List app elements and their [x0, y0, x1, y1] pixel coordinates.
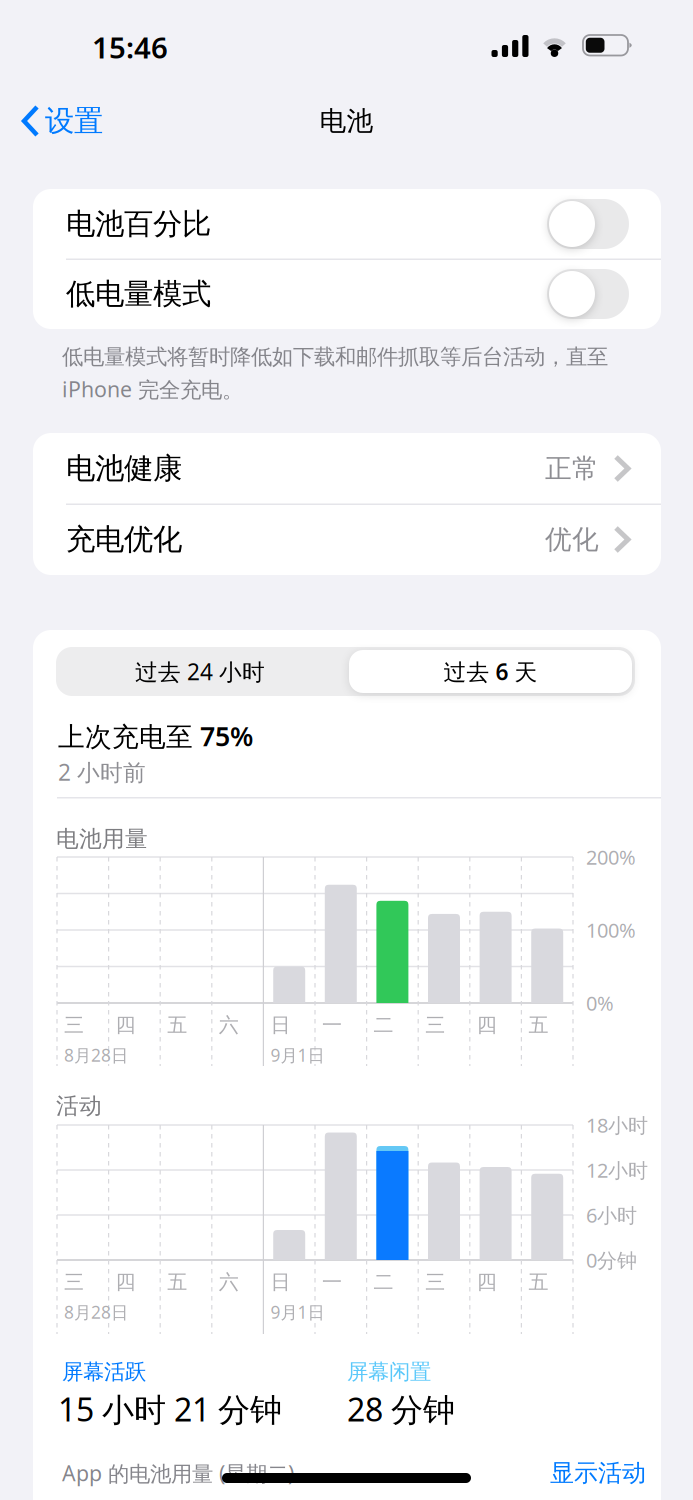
staticText: 电池百分比 — [66, 206, 211, 242]
staticText: App 的电池用量 (星期二) — [62, 1459, 294, 1487]
staticText: iPhone 完全充电。 — [62, 375, 243, 403]
button[interactable]: 电池健康 — [33, 433, 661, 504]
button[interactable]: 过去 6 天 — [349, 650, 632, 693]
staticText: 过去 6 天 — [443, 656, 537, 686]
staticText: 六 — [219, 1270, 239, 1294]
button[interactable]: 电池百分比 — [33, 189, 661, 259]
staticText: 五 — [167, 1013, 187, 1037]
staticText: 屏幕活跃 — [62, 1359, 146, 1385]
staticText: 0% — [586, 990, 614, 1016]
button[interactable]: 显示活动 — [542, 1455, 646, 1491]
button[interactable]: 低电量模式 — [33, 259, 661, 329]
button[interactable]: 充电优化 — [33, 504, 661, 575]
staticText: 充电优化 — [66, 521, 182, 557]
staticText: 15 小时 21 分钟 — [58, 1388, 282, 1430]
staticText: 三 — [64, 1013, 84, 1037]
button[interactable]: 设置 — [22, 99, 132, 143]
staticText: 电池用量 — [56, 825, 148, 853]
staticText: 优化 — [545, 523, 599, 556]
staticText: 活动 — [56, 1092, 102, 1120]
staticText: 28 分钟 — [347, 1388, 455, 1430]
staticText: 9月1日 — [270, 1300, 324, 1323]
staticText: 四 — [116, 1270, 136, 1294]
staticText: 日 — [270, 1270, 290, 1294]
staticText: 低电量模式将暂时降低如下载和邮件抓取等后台活动，直至 — [62, 344, 608, 370]
staticText: 四 — [116, 1013, 136, 1037]
staticText: 上次充电至 75% — [58, 718, 253, 754]
staticText: 200% — [586, 844, 636, 870]
staticText: 2 小时前 — [58, 757, 146, 787]
staticText: 六 — [219, 1013, 239, 1037]
staticText: 100% — [586, 917, 636, 943]
staticText: 三 — [64, 1270, 84, 1294]
staticText: 8月28日 — [64, 1300, 128, 1323]
staticText: 三 — [425, 1013, 445, 1037]
staticText: 电池 — [319, 105, 373, 137]
staticText: 9月1日 — [270, 1043, 324, 1066]
staticText: 6小时 — [586, 1202, 637, 1228]
staticText: 低电量模式 — [66, 276, 211, 312]
staticText: 0分钟 — [586, 1247, 637, 1273]
staticText: 18小时 — [586, 1112, 648, 1138]
staticText: 正常 — [545, 452, 599, 485]
staticText: 二 — [374, 1270, 394, 1294]
staticText: 二 — [374, 1013, 394, 1037]
staticText: 屏幕闲置 — [347, 1359, 431, 1385]
staticText: 显示活动 — [550, 1458, 646, 1488]
staticText: 过去 24 小时 — [135, 656, 265, 686]
staticText: 8月28日 — [64, 1043, 128, 1066]
staticText: 日 — [270, 1013, 290, 1037]
staticText: 电池健康 — [66, 450, 182, 486]
staticText: 五 — [167, 1270, 187, 1294]
staticText: 12小时 — [586, 1157, 648, 1183]
staticText: 四 — [477, 1270, 497, 1294]
staticText: 五 — [528, 1013, 548, 1037]
staticText: 15:46 — [92, 27, 168, 66]
button[interactable]: 过去 24 小时 — [56, 647, 345, 696]
staticText: 四 — [477, 1013, 497, 1037]
staticText: 一 — [322, 1013, 342, 1037]
staticText: 五 — [528, 1270, 548, 1294]
staticText: 三 — [425, 1270, 445, 1294]
staticText: 设置 — [45, 103, 103, 139]
staticText: 一 — [322, 1270, 342, 1294]
